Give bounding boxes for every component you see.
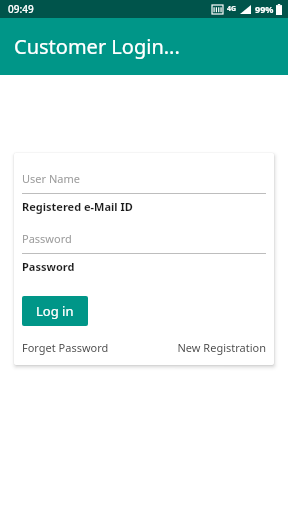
staticText: New Registration [177,340,266,355]
staticText: 99% [255,3,274,15]
button[interactable]: Forget Password [22,340,177,355]
staticText: Forget Password [22,340,109,355]
staticText: Registered e-Mail ID [22,199,133,214]
button[interactable]: New Registration [177,340,266,355]
button[interactable]: Log in [22,296,88,326]
staticText: Password [22,231,72,246]
staticText: Password [22,259,75,274]
staticText: Log in [36,302,74,320]
staticText: User Name [22,171,80,186]
staticText: 09:49 [8,2,34,16]
staticText: Customer Login... [14,33,180,60]
staticText: 4G [227,4,237,14]
